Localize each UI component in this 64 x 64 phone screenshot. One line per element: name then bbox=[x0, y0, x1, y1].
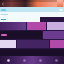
button[interactable]: Library bbox=[32, 56, 48, 64]
button[interactable] bbox=[0, 7, 64, 12]
button[interactable] bbox=[0, 31, 42, 39]
button[interactable] bbox=[0, 17, 40, 22]
button[interactable] bbox=[0, 12, 64, 17]
button[interactable]: Profile bbox=[48, 56, 64, 64]
button[interactable] bbox=[0, 22, 26, 30]
button[interactable]: Back bbox=[1, 2, 5, 6]
button[interactable]: Search bbox=[16, 56, 32, 64]
button[interactable]: Home bbox=[0, 56, 16, 64]
